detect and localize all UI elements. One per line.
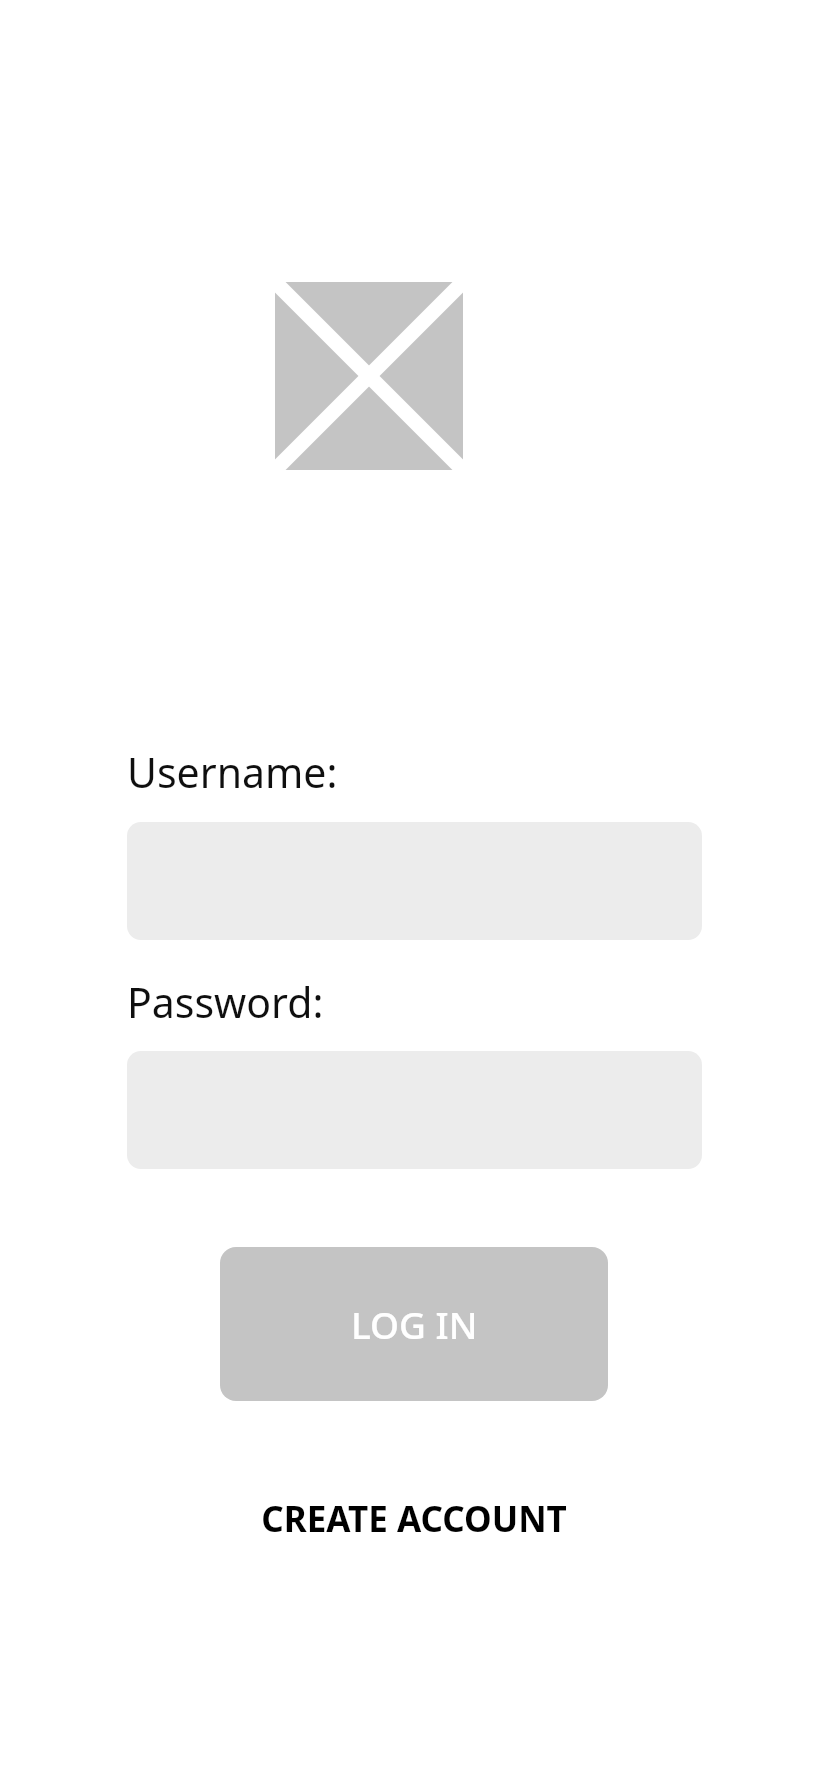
other: App logo placeholder	[275, 282, 463, 470]
staticText: Password:	[127, 974, 324, 1030]
staticText: Username:	[127, 744, 338, 800]
staticText: LOG IN	[351, 1299, 478, 1349]
button[interactable]: CREATE ACCOUNT	[0, 1487, 828, 1551]
staticText: CREATE ACCOUNT	[261, 1495, 567, 1543]
button[interactable]: LOG IN	[220, 1247, 608, 1401]
